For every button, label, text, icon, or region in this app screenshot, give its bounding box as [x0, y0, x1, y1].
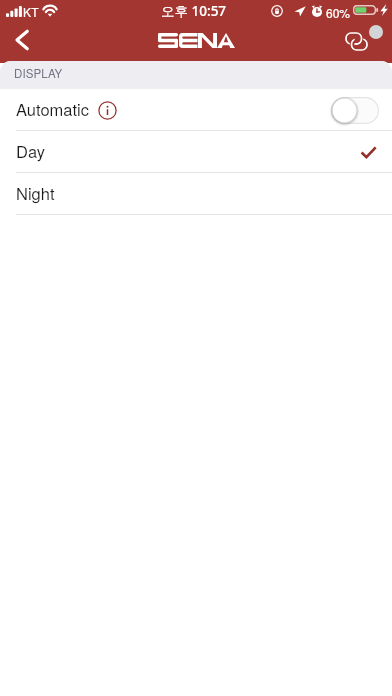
button[interactable]: Automatic	[0, 89, 392, 130]
button[interactable]: Back	[0, 18, 44, 62]
staticText: Night	[16, 181, 55, 205]
button[interactable]: Night	[0, 173, 392, 214]
other: Selected	[357, 141, 379, 163]
button[interactable]: Information	[96, 99, 118, 121]
staticText: 60%	[326, 4, 351, 21]
staticText: KT	[23, 3, 39, 20]
staticText: DISPLAY	[14, 65, 63, 81]
button[interactable]: Day	[0, 131, 392, 172]
button[interactable]: Connect devices	[335, 21, 378, 61]
staticText: 오후 10:57	[161, 2, 227, 20]
button[interactable]: Automatic toggle	[331, 95, 379, 126]
staticText: Automatic	[16, 97, 90, 121]
staticText: Day	[16, 139, 45, 163]
